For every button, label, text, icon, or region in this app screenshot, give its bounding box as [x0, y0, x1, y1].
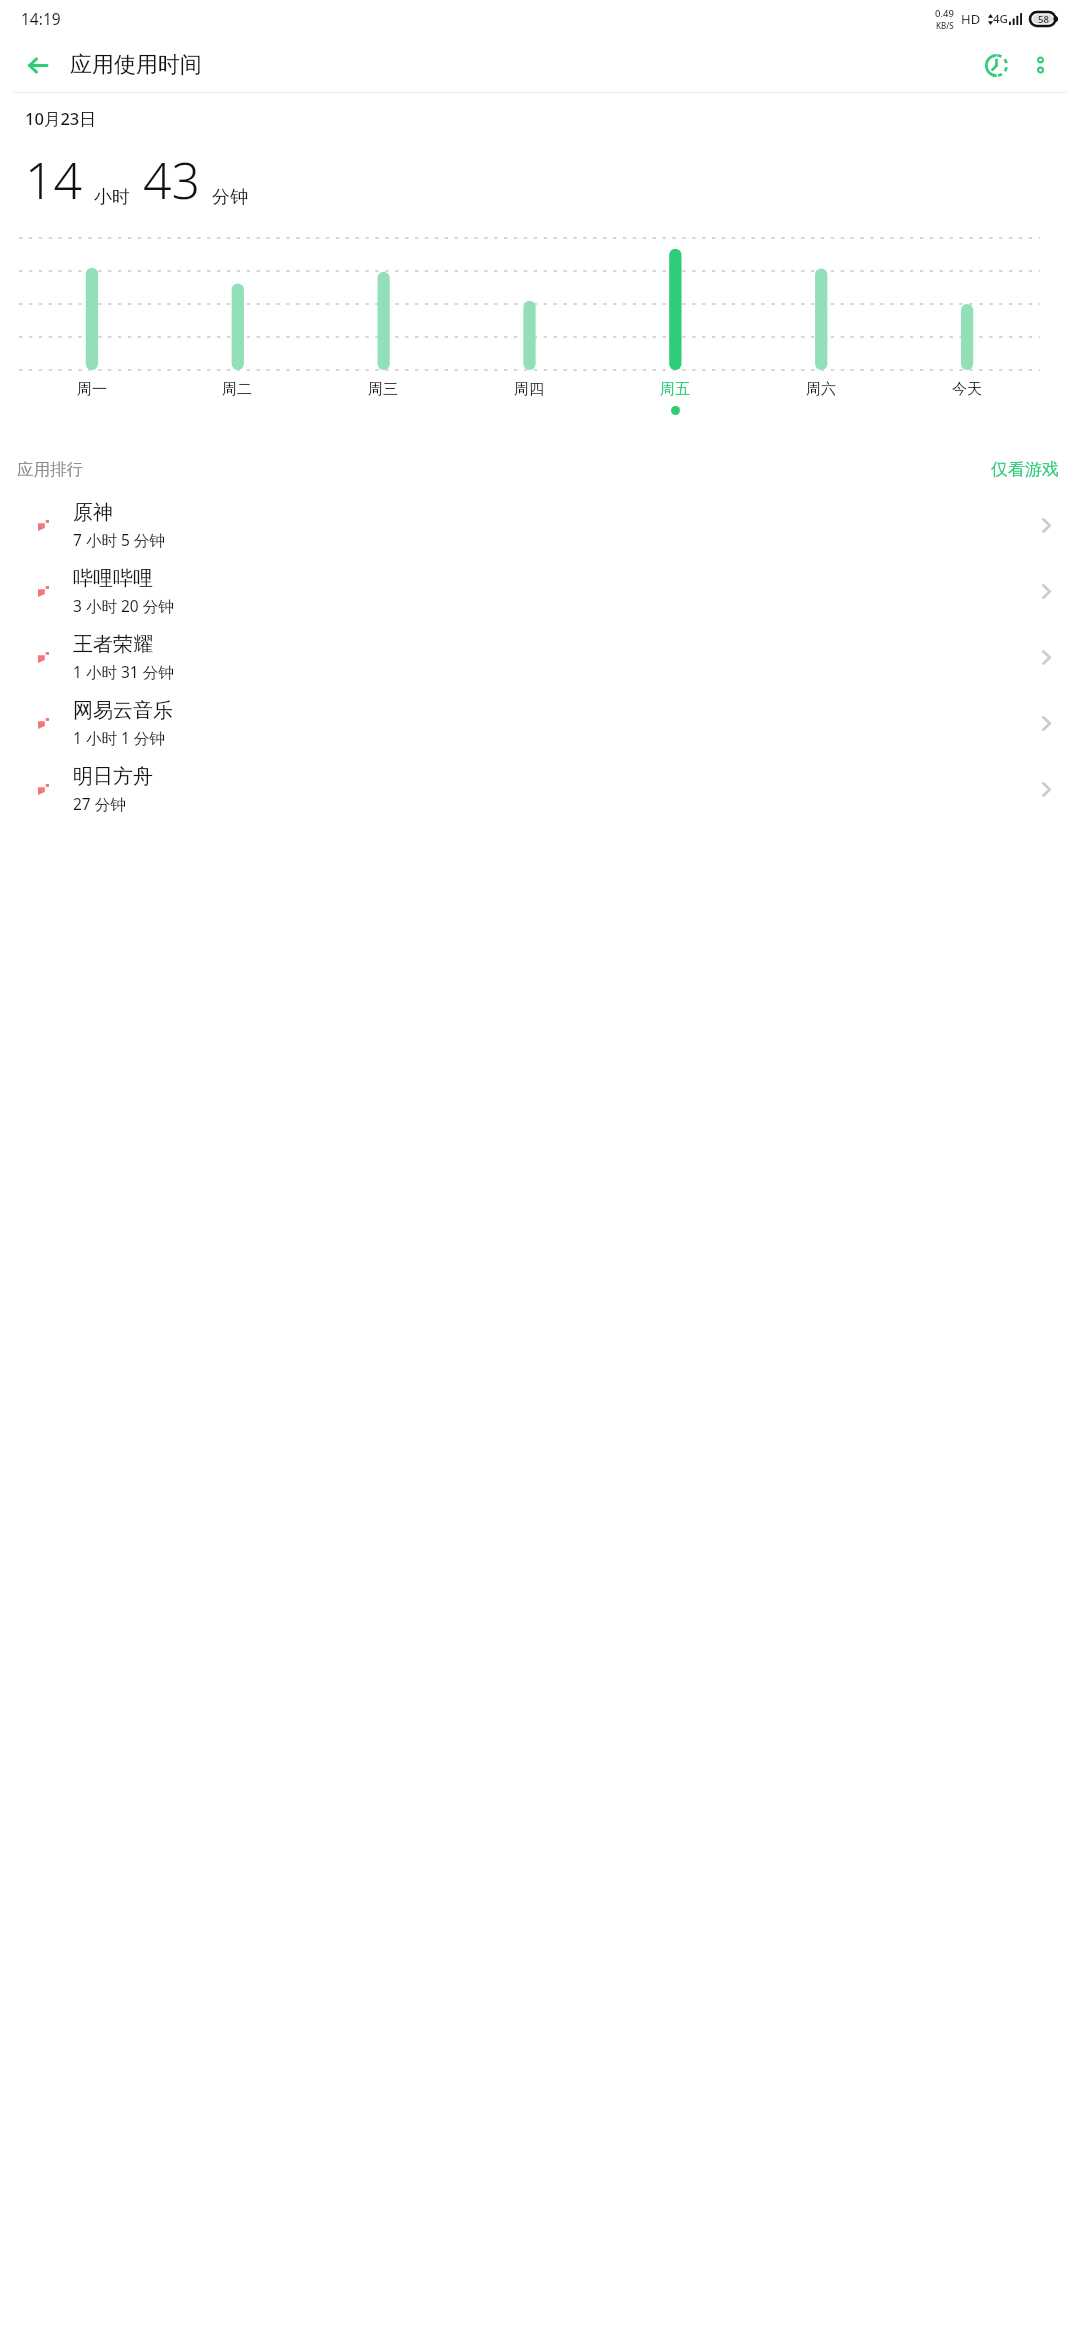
staticText: 0.49	[935, 7, 954, 20]
staticText: 今天	[952, 380, 982, 399]
staticText: 应用使用时间	[70, 51, 202, 79]
button[interactable]: 仅看游戏	[987, 455, 1063, 484]
staticText: 周二	[222, 380, 252, 399]
staticText: 分钟	[212, 186, 248, 209]
staticText: 14:19	[21, 8, 61, 29]
staticText: 王者荣耀	[73, 632, 153, 657]
button[interactable]: 周二	[164, 380, 310, 399]
staticText: 网易云音乐	[73, 698, 173, 723]
staticText: 14	[25, 146, 83, 214]
staticText: 43	[143, 146, 201, 214]
staticText: 原神	[73, 500, 113, 525]
staticText: 58	[1038, 13, 1049, 26]
staticText: 周六	[806, 380, 836, 399]
staticText: 周一	[77, 380, 107, 399]
staticText: 1 小时 1 分钟	[73, 727, 165, 748]
button[interactable]: 原神	[0, 492, 1080, 558]
staticText: 明日方舟	[73, 764, 153, 789]
button[interactable]: 周四	[456, 380, 602, 399]
button[interactable]: 明日方舟	[0, 756, 1080, 822]
button[interactable]: 哔哩哔哩	[0, 558, 1080, 624]
button[interactable]: 周一	[19, 380, 164, 399]
button[interactable]: 周五	[602, 380, 748, 399]
button[interactable]: 网易云音乐	[0, 690, 1080, 756]
staticText: 3 小时 20 分钟	[73, 595, 174, 616]
staticText: 10月23日	[25, 107, 96, 130]
staticText: HD	[961, 10, 981, 28]
button[interactable]: 王者荣耀	[0, 624, 1080, 690]
staticText: 周三	[368, 380, 398, 399]
staticText: 周五	[660, 380, 690, 399]
staticText: 应用排行	[17, 459, 83, 480]
staticText: 小时	[94, 186, 130, 209]
staticText: 7 小时 5 分钟	[73, 529, 165, 550]
staticText: KB/S	[936, 20, 954, 31]
button[interactable]: 今天	[894, 380, 1040, 399]
staticText: 周四	[514, 380, 544, 399]
staticText: 仅看游戏	[991, 459, 1059, 480]
button[interactable]: 周三	[310, 380, 456, 399]
staticText: 哔哩哔哩	[73, 566, 153, 591]
button[interactable]: Usage timer	[974, 43, 1018, 87]
staticText: 27 分钟	[73, 793, 126, 814]
staticText: 1 小时 31 分钟	[73, 661, 174, 682]
button[interactable]: More options	[1018, 43, 1062, 87]
staticText: 4G	[993, 11, 1008, 27]
button[interactable]: 周六	[748, 380, 894, 399]
button[interactable]: Back	[16, 43, 60, 87]
